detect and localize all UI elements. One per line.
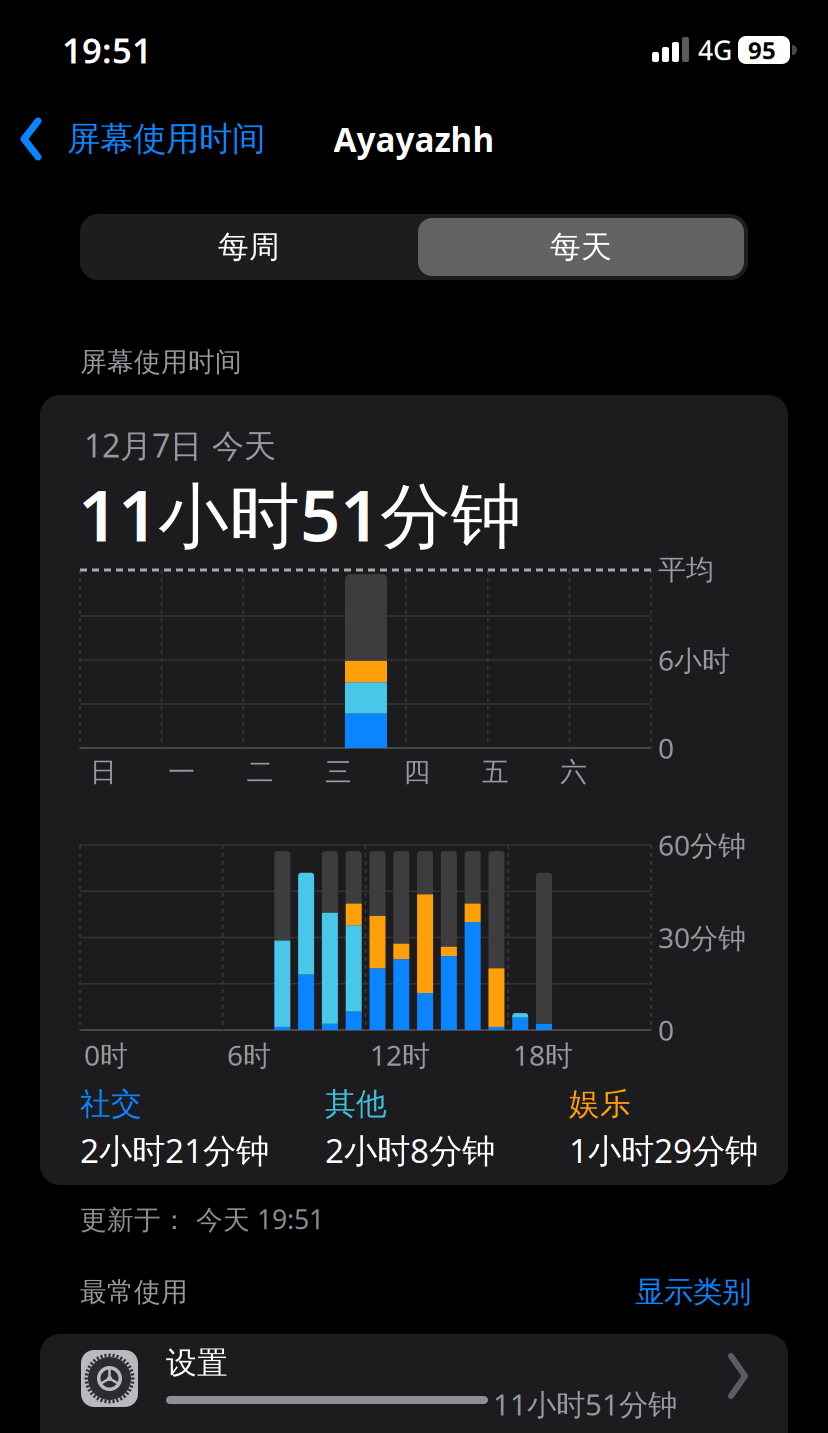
staticText: 一	[168, 756, 195, 788]
staticText: 2小时21分钟	[80, 1128, 269, 1172]
staticText: 11小时51分钟	[78, 467, 522, 561]
staticText: 95	[748, 34, 776, 66]
staticText: 二	[247, 756, 274, 788]
button[interactable]: 设置	[40, 1334, 788, 1433]
staticText: 2小时8分钟	[325, 1128, 495, 1172]
staticText: 显示类别	[635, 1274, 751, 1310]
staticText: 最常使用	[80, 1276, 188, 1308]
staticText: 六	[560, 756, 587, 788]
staticText: 30分钟	[658, 919, 746, 956]
staticText: 6小时	[658, 641, 730, 679]
staticText: 6时	[227, 1036, 271, 1074]
staticText: 屏幕使用时间	[67, 118, 265, 159]
staticText: 12月7日 今天	[84, 424, 276, 466]
staticText: 社交	[80, 1085, 142, 1123]
staticText: 每天	[550, 228, 612, 266]
staticText: 18时	[513, 1036, 573, 1074]
button[interactable]: 显示类别	[591, 1267, 751, 1317]
staticText: Ayayazhh	[333, 117, 494, 161]
staticText: 三	[325, 756, 352, 788]
staticText: 四	[403, 756, 430, 788]
staticText: 其他	[325, 1085, 387, 1123]
staticText: 4G	[698, 32, 732, 68]
staticText: 设置	[166, 1344, 228, 1382]
staticText: 11小时51分钟	[493, 1384, 677, 1423]
staticText: 每周	[218, 228, 280, 266]
staticText: 娱乐	[569, 1085, 631, 1123]
staticText: 屏幕使用时间	[80, 346, 242, 378]
button[interactable]: 每天	[416, 214, 746, 280]
staticText: 0	[658, 729, 674, 767]
staticText: 19:51	[62, 27, 152, 73]
staticText: 0时	[84, 1036, 128, 1074]
staticText: 日	[90, 756, 117, 788]
staticText: 0	[658, 1011, 674, 1049]
staticText: 12时	[370, 1036, 430, 1074]
staticText: 60分钟	[658, 826, 746, 864]
staticText: 更新于： 今天 19:51	[80, 1201, 324, 1237]
staticText: 平均	[658, 553, 714, 587]
staticText: 1小时29分钟	[569, 1128, 758, 1172]
staticText: 五	[482, 756, 509, 788]
button[interactable]: 返回 屏幕使用时间	[24, 106, 284, 172]
button[interactable]: 每周	[84, 214, 414, 280]
